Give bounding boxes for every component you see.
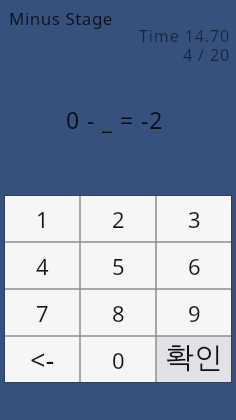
button[interactable]: 6 — [156, 242, 232, 289]
staticText: 5 — [112, 251, 125, 281]
button[interactable]: 2 — [80, 195, 156, 242]
button[interactable]: 9 — [156, 289, 232, 336]
button[interactable]: 0 — [80, 336, 156, 383]
button[interactable]: <- — [4, 336, 80, 383]
staticText: 0 - _ = -2 — [66, 104, 164, 135]
button[interactable]: 확인 — [156, 336, 232, 383]
button[interactable]: 4 — [4, 242, 80, 289]
staticText: <- — [30, 341, 55, 378]
button[interactable]: 3 — [156, 195, 232, 242]
staticText: 3 — [188, 204, 201, 234]
staticText: 1 — [36, 204, 49, 234]
button[interactable]: 8 — [80, 289, 156, 336]
button[interactable]: 7 — [4, 289, 80, 336]
staticText: 0 — [112, 345, 125, 375]
staticText: 6 — [188, 251, 201, 281]
staticText: 확인 — [165, 339, 223, 376]
staticText: 9 — [188, 298, 201, 328]
button[interactable]: 1 — [4, 195, 80, 242]
button[interactable]: 5 — [80, 242, 156, 289]
staticText: Time 14.70 — [139, 25, 231, 47]
staticText: 8 — [112, 298, 125, 328]
staticText: 4 — [36, 251, 49, 281]
staticText: 7 — [36, 298, 49, 328]
staticText: 2 — [112, 204, 125, 234]
staticText: 4 / 20 — [183, 44, 231, 66]
staticText: Minus Stage — [9, 7, 113, 30]
